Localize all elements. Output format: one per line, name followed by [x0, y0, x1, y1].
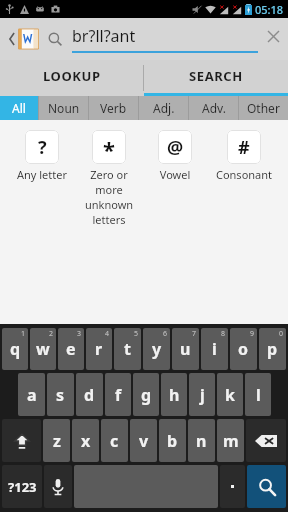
button[interactable]: h: [161, 373, 187, 416]
staticText: n: [196, 430, 207, 452]
staticText: 5: [134, 329, 139, 339]
staticText: u: [180, 338, 191, 360]
staticText: @: [167, 135, 184, 160]
staticText: b: [167, 430, 178, 452]
button[interactable]: s: [47, 373, 74, 416]
button[interactable]: Voice input: [44, 465, 72, 508]
staticText: y: [152, 338, 162, 360]
staticText: Adv.: [202, 100, 226, 116]
button[interactable]: a: [18, 373, 45, 416]
staticText: 8: [221, 329, 226, 339]
staticText: Vowel: [144, 167, 206, 182]
button[interactable]: d: [76, 373, 103, 416]
staticText: br?ll?ant: [72, 25, 136, 47]
staticText: 3: [77, 329, 82, 339]
staticText: t: [124, 338, 131, 360]
button[interactable]: Adv.: [189, 96, 238, 120]
staticText: j: [200, 384, 205, 406]
staticText: ?123: [8, 478, 37, 496]
staticText: h: [169, 384, 180, 406]
staticText: SEARCH: [189, 67, 243, 85]
button[interactable]: m: [217, 419, 244, 462]
button[interactable]: i: [201, 328, 228, 370]
button[interactable]: Shift: [2, 419, 41, 462]
staticText: e: [66, 338, 76, 360]
button[interactable]: u: [172, 328, 199, 370]
button[interactable]: ?123: [2, 465, 42, 508]
button[interactable]: k: [217, 373, 243, 416]
staticText: p: [267, 338, 278, 360]
staticText: 7: [192, 329, 197, 339]
staticText: Noun: [48, 100, 80, 116]
button[interactable]: e: [58, 328, 84, 370]
staticText: 9: [250, 329, 255, 339]
staticText: m: [223, 430, 239, 452]
staticText: k: [225, 384, 235, 406]
staticText: Adj.: [153, 100, 175, 116]
staticText: 6: [163, 329, 168, 339]
button[interactable]: v: [130, 419, 157, 462]
button[interactable]: c: [101, 419, 128, 462]
button[interactable]: t: [114, 328, 141, 370]
staticText: Verb: [100, 100, 127, 116]
button[interactable]: Adj.: [139, 96, 188, 120]
button[interactable]: Backspace: [246, 419, 286, 462]
button[interactable]: l: [245, 373, 271, 416]
staticText: g: [141, 384, 152, 406]
staticText: ?: [38, 135, 47, 160]
staticText: 05:18: [255, 2, 284, 17]
staticText: z: [53, 430, 61, 452]
staticText: f: [115, 384, 122, 406]
button[interactable]: #: [209, 130, 279, 182]
button[interactable]: *: [78, 130, 140, 227]
staticText: x: [81, 430, 91, 452]
staticText: Any letter: [9, 167, 75, 182]
button[interactable]: Noun: [39, 96, 88, 120]
staticText: c: [110, 430, 119, 452]
button[interactable]: o: [230, 328, 257, 370]
staticText: v: [139, 430, 149, 452]
button[interactable]: Search: [247, 465, 286, 508]
staticText: r: [95, 338, 103, 360]
button[interactable]: b: [159, 419, 186, 462]
button[interactable]: f: [105, 373, 131, 416]
button[interactable]: SEARCH: [144, 60, 288, 96]
staticText: s: [56, 384, 65, 406]
staticText: All: [12, 100, 26, 116]
staticText: q: [10, 338, 21, 360]
staticText: Other: [247, 100, 280, 116]
button[interactable]: y: [143, 328, 170, 370]
button[interactable]: @: [144, 130, 206, 182]
staticText: d: [84, 384, 95, 406]
button[interactable]: LOOKUP: [0, 60, 143, 96]
button[interactable]: g: [133, 373, 159, 416]
button[interactable]: z: [43, 419, 70, 462]
staticText: #: [238, 135, 250, 160]
staticText: a: [27, 384, 37, 406]
staticText: l: [256, 384, 261, 406]
staticText: Consonant: [209, 167, 279, 182]
button[interactable]: p: [259, 328, 286, 370]
button[interactable]: Clear search: [258, 18, 288, 60]
button[interactable]: x: [72, 419, 99, 462]
button[interactable]: br?ll?ant: [72, 18, 258, 60]
staticText: *: [103, 134, 115, 164]
staticText: o: [238, 338, 249, 360]
button[interactable]: Other: [239, 96, 288, 120]
staticText: 0: [279, 329, 284, 339]
button[interactable]: Verb: [89, 96, 138, 120]
button[interactable]: ?: [9, 130, 75, 182]
button[interactable]: w: [30, 328, 56, 370]
staticText: 1: [21, 329, 26, 339]
button[interactable]: r: [86, 328, 112, 370]
button[interactable]: All: [0, 96, 38, 120]
button[interactable]: j: [189, 373, 215, 416]
staticText: Zero or more unknown letters: [78, 167, 140, 227]
button[interactable]: n: [188, 419, 215, 462]
button[interactable]: [220, 465, 245, 508]
staticText: 4: [105, 329, 110, 339]
button[interactable]: Navigate up: [0, 18, 48, 60]
button[interactable]: q: [2, 328, 28, 370]
staticText: 2: [49, 329, 54, 339]
